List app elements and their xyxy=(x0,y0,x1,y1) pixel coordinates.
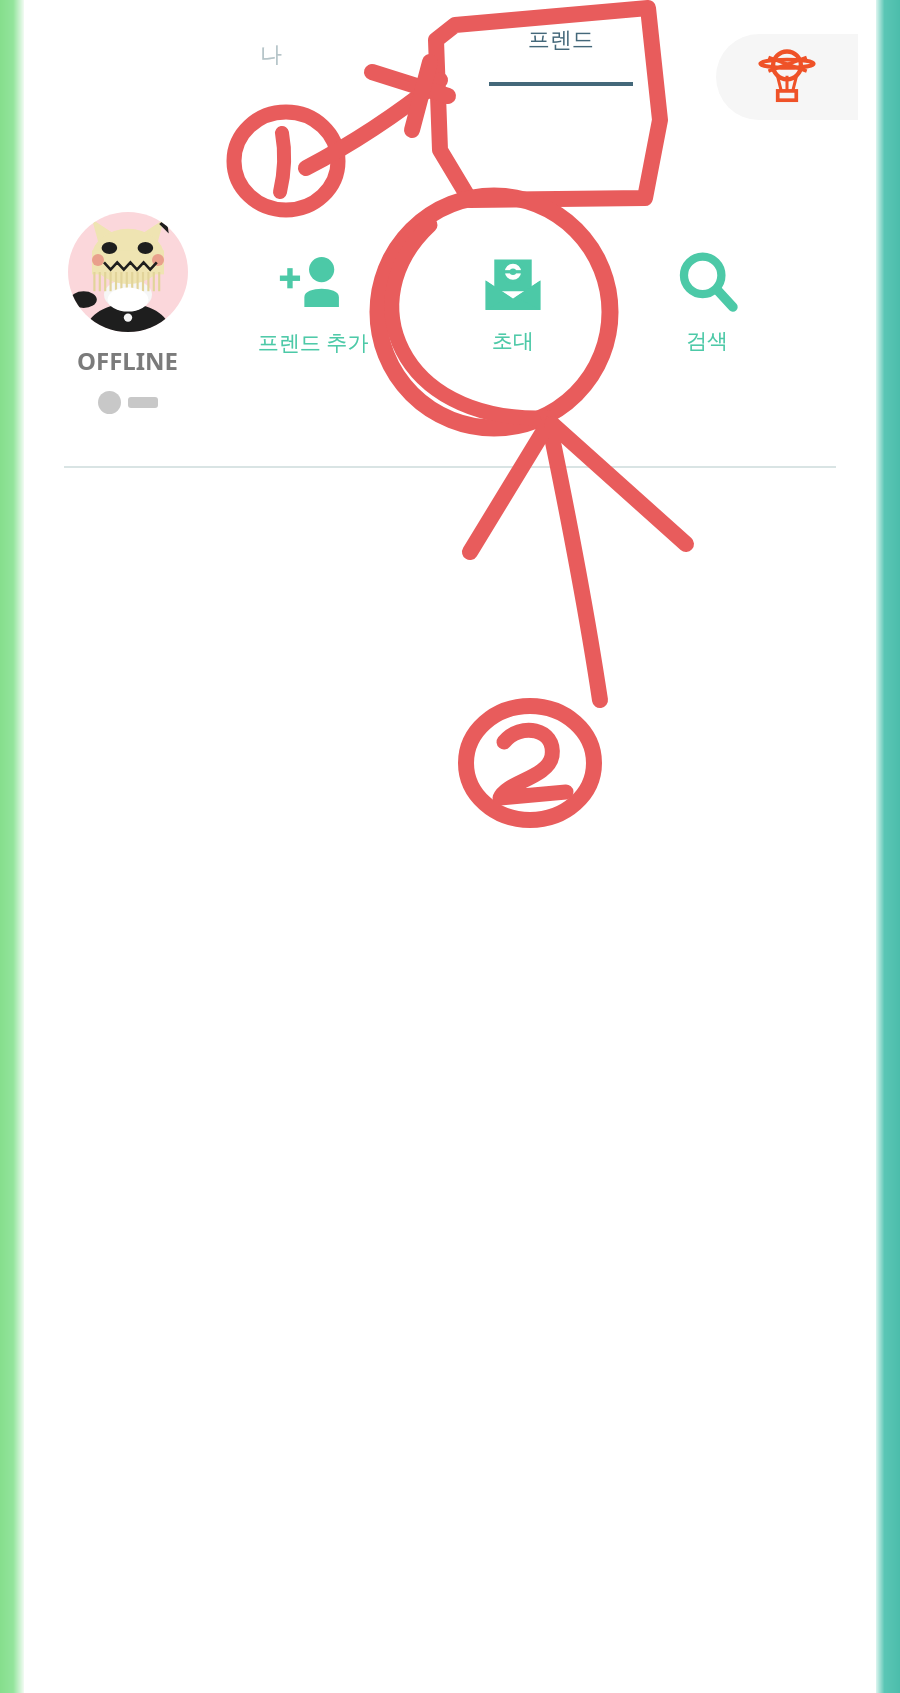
button[interactable]: 프렌드 추가 xyxy=(248,248,378,357)
staticText: 프렌드 추가 xyxy=(258,328,369,357)
staticText: 초대 xyxy=(492,328,534,354)
button[interactable]: 나 xyxy=(206,26,336,84)
staticText: 나 xyxy=(260,41,282,69)
staticText: OFFLINE xyxy=(77,344,179,377)
button[interactable]: 검색 xyxy=(642,248,772,354)
button[interactable]: OFFLINE xyxy=(60,212,196,414)
button[interactable]: 프렌드 xyxy=(466,26,656,102)
button[interactable]: 초대 xyxy=(448,248,578,354)
staticText: 검색 xyxy=(686,328,728,354)
staticText: 프렌드 xyxy=(528,26,594,54)
button[interactable]: Balloon event xyxy=(716,34,858,120)
